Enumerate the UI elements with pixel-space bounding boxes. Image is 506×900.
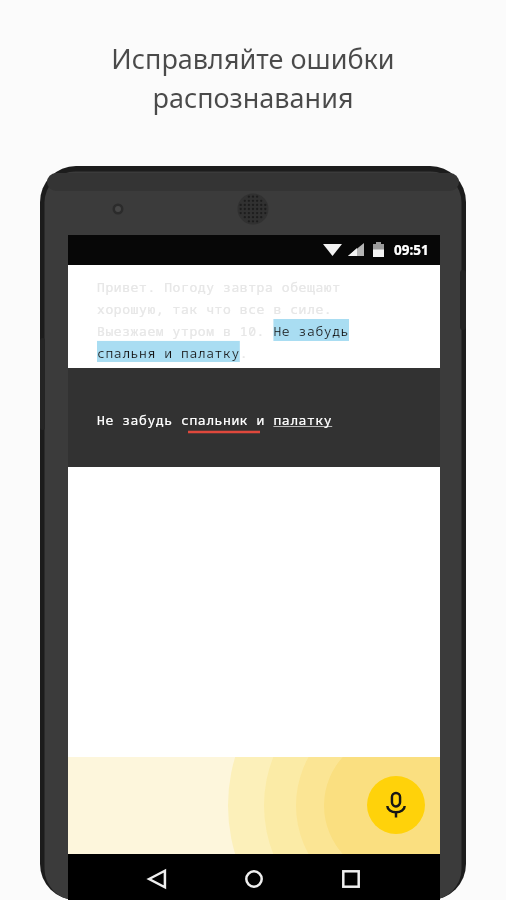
staticText: Привет. Погоду завтра обещают хорошую, т… [97, 278, 349, 362]
button[interactable]: Voice input area [68, 757, 440, 854]
staticText: 09:51 [394, 241, 429, 259]
staticText: Не забудь спальник и палатку [97, 411, 333, 429]
staticText: Исправляйте ошибки распознавания [38, 40, 468, 132]
button[interactable]: Recent apps [332, 860, 370, 898]
button[interactable]: Не забудь спальник и палатку [68, 368, 440, 467]
button[interactable]: Microphone [367, 776, 425, 834]
button[interactable]: Home [235, 860, 273, 898]
button[interactable]: Back [138, 860, 176, 898]
button[interactable]: Привет. Погоду завтра обещают хорошую, т… [68, 265, 440, 368]
